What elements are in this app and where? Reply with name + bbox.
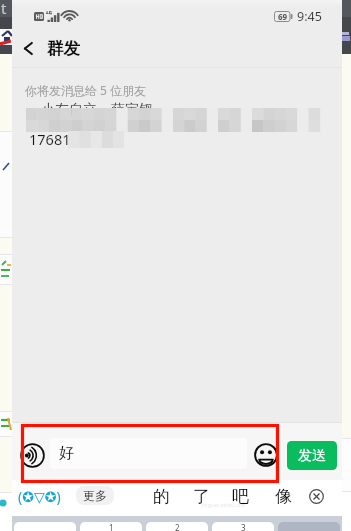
button[interactable]: Emoji: [252, 441, 280, 469]
staticText: 发送: [298, 447, 326, 465]
button[interactable]: 1: [80, 522, 142, 531]
button[interactable]: 像: [269, 482, 298, 511]
staticText: 小友自立，薛宝钗，: [41, 101, 167, 119]
button[interactable]: 更多: [76, 486, 114, 505]
button[interactable]: 3: [212, 522, 274, 531]
button[interactable]: 的: [147, 482, 176, 511]
staticText: 更多: [83, 488, 107, 503]
staticText: 9:45: [297, 8, 322, 25]
staticText: 了: [193, 486, 210, 507]
staticText: 2: [175, 522, 180, 531]
staticText: 69: [278, 11, 288, 22]
button[interactable]: 2: [146, 522, 208, 531]
staticText: 你将发消息给 5 位朋友: [25, 82, 147, 98]
button[interactable]: 吧: [226, 482, 255, 511]
staticText: 3: [241, 522, 246, 531]
button[interactable]: [278, 522, 340, 531]
button[interactable]: Voice input: [18, 441, 46, 469]
staticText: jingyan.baidu.com: [202, 502, 246, 509]
staticText: 像: [275, 486, 292, 507]
staticText: 17681: [29, 129, 71, 149]
button[interactable]: (✪▽✪): [16, 484, 63, 509]
button[interactable]: Close suggestions: [304, 484, 328, 508]
button[interactable]: 了: [187, 482, 216, 511]
button[interactable]: 群发: [12, 28, 90, 68]
staticText: 吧: [232, 486, 249, 507]
staticText: (✪▽✪): [18, 487, 61, 506]
staticText: 的: [153, 486, 170, 507]
button[interactable]: 发送: [287, 441, 337, 470]
staticText: 1: [109, 522, 114, 531]
staticText: 群发: [47, 38, 80, 59]
staticText: t: [1, 0, 7, 18]
staticText: 好: [59, 444, 74, 463]
button[interactable]: [14, 522, 76, 531]
button[interactable]: 好: [50, 438, 247, 469]
